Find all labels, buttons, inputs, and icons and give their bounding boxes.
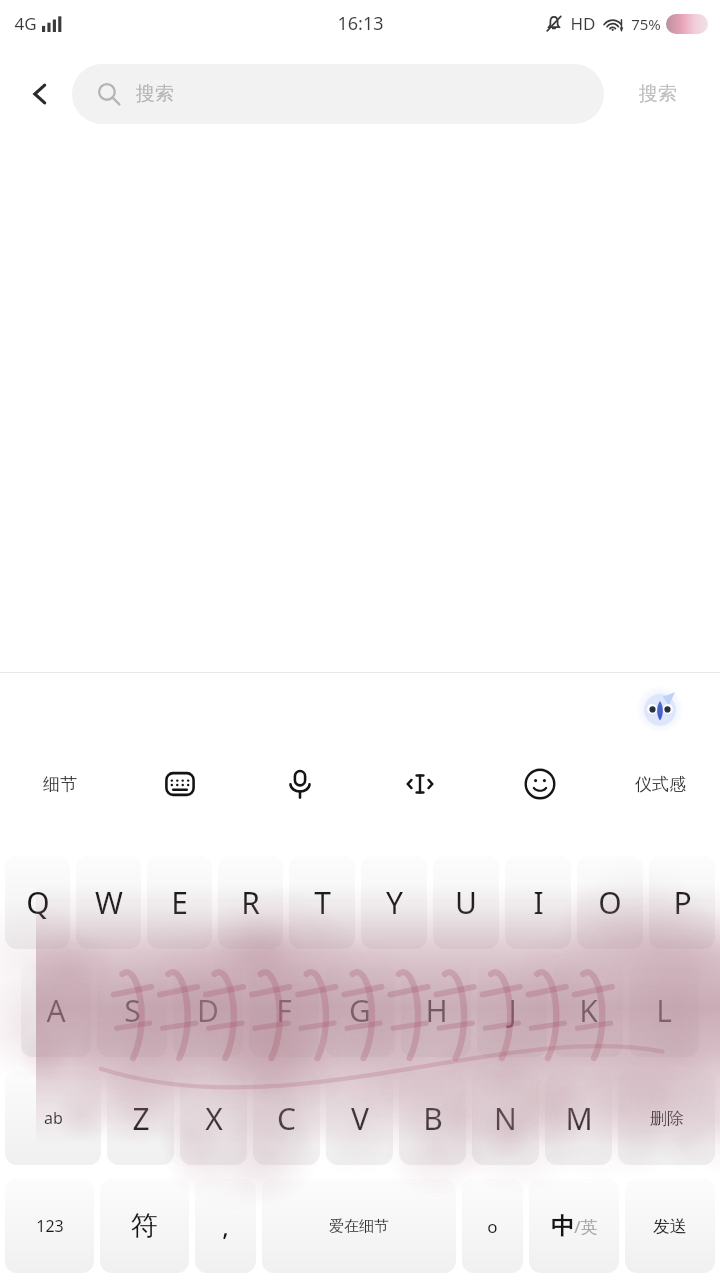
button[interactable]: H [401, 963, 471, 1057]
staticText: ab [44, 1107, 63, 1129]
staticText: H [425, 990, 448, 1031]
button[interactable]: 仪式感 [600, 741, 720, 827]
staticText: J [508, 990, 517, 1031]
button[interactable]: Emoji [480, 741, 600, 827]
button[interactable]: Back [12, 66, 68, 122]
staticText: R [241, 882, 260, 923]
staticText: B [423, 1098, 443, 1139]
staticText: , [222, 1210, 229, 1243]
staticText: 细节 [43, 774, 77, 795]
button[interactable]: R [218, 856, 283, 949]
staticText: 16:13 [337, 11, 384, 36]
staticText: 123 [36, 1215, 64, 1237]
button[interactable]: W [76, 856, 141, 949]
button[interactable]: G [325, 963, 395, 1057]
staticText: G [349, 990, 371, 1031]
button[interactable]: J [477, 963, 547, 1057]
button[interactable]: U [433, 856, 499, 949]
button[interactable]: 爱在细节 [262, 1179, 456, 1273]
staticText: 爱在细节 [329, 1217, 389, 1236]
button[interactable]: C [253, 1071, 320, 1165]
button[interactable]: 细节 [0, 741, 120, 827]
staticText: K [579, 990, 598, 1031]
button[interactable]: 搜索 [72, 64, 604, 124]
button[interactable]: L [629, 963, 699, 1057]
button[interactable]: D [173, 963, 243, 1057]
button[interactable]: Voice input [240, 741, 360, 827]
button[interactable]: M [545, 1071, 612, 1165]
staticText: 符 [131, 1209, 158, 1243]
staticText: N [494, 1098, 517, 1139]
button[interactable]: B [399, 1071, 466, 1165]
staticText: T [314, 882, 331, 923]
staticText: M [565, 1098, 593, 1139]
button[interactable]: N [472, 1071, 539, 1165]
staticText: Y [386, 882, 403, 923]
button[interactable]: o [462, 1179, 523, 1273]
button[interactable]: 123 [5, 1179, 94, 1273]
staticText: E [171, 882, 188, 923]
button[interactable]: F [249, 963, 319, 1057]
staticText: S [124, 990, 141, 1031]
button[interactable]: I [505, 856, 571, 949]
button[interactable]: Y [361, 856, 427, 949]
staticText: X [205, 1098, 223, 1139]
button[interactable]: V [326, 1071, 393, 1165]
button[interactable]: Move cursor [360, 741, 480, 827]
button[interactable]: Q [5, 856, 70, 949]
button[interactable]: Input method logo [638, 687, 682, 731]
staticText: 搜索 [136, 82, 174, 106]
button[interactable]: T [289, 856, 355, 949]
staticText: A [46, 990, 66, 1031]
button[interactable]: Z [107, 1071, 174, 1165]
staticText: 搜索 [639, 82, 677, 106]
button[interactable]: P [649, 856, 715, 949]
staticText: W [95, 882, 123, 923]
staticText: C [277, 1098, 296, 1139]
button[interactable]: ab [5, 1071, 101, 1165]
staticText: I [533, 882, 544, 923]
staticText: V [351, 1098, 369, 1139]
staticText: L [656, 990, 672, 1031]
staticText: HD [570, 12, 596, 35]
button[interactable]: A [21, 963, 91, 1057]
button[interactable]: 删除 [618, 1071, 715, 1165]
button[interactable]: S [97, 963, 167, 1057]
staticText: Z [132, 1098, 150, 1139]
staticText: D [197, 990, 219, 1031]
staticText: 删除 [650, 1108, 684, 1129]
button[interactable]: 中 [529, 1179, 619, 1273]
staticText: 75% [631, 14, 661, 34]
staticText: Q [26, 882, 50, 923]
staticText: 仪式感 [635, 774, 686, 795]
staticText: P [673, 882, 692, 923]
staticText: F [276, 990, 292, 1031]
staticText: O [598, 882, 622, 923]
staticText: 中 [551, 1212, 574, 1241]
staticText: 4G [14, 12, 37, 35]
button[interactable]: 搜索 [604, 46, 712, 142]
staticText: U [455, 882, 477, 923]
button[interactable]: Keyboard layout [120, 741, 240, 827]
button[interactable]: E [147, 856, 212, 949]
button[interactable]: K [553, 963, 623, 1057]
staticText: 发送 [653, 1216, 687, 1237]
button[interactable]: 符 [100, 1179, 189, 1273]
button[interactable]: , [195, 1179, 256, 1273]
staticText: o [487, 1215, 498, 1238]
staticText: /英 [574, 1215, 598, 1238]
button[interactable]: X [180, 1071, 247, 1165]
button[interactable]: O [577, 856, 643, 949]
button[interactable]: 发送 [625, 1179, 715, 1273]
